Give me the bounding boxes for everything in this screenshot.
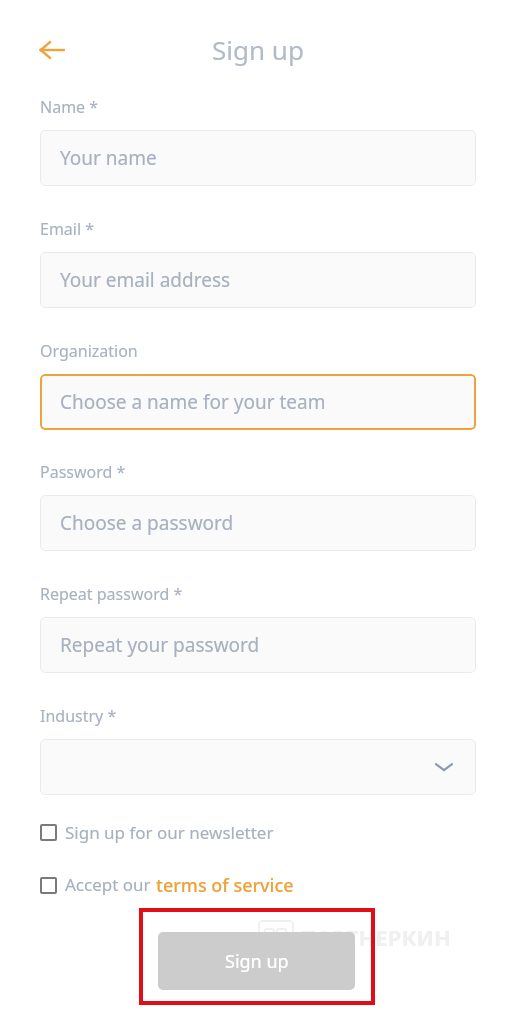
button[interactable]: Your name	[40, 130, 476, 186]
staticText: Sign up	[0, 32, 516, 67]
staticText: Your email address	[60, 267, 231, 293]
button[interactable]: Repeat your password	[40, 617, 476, 673]
staticText: Accept our	[65, 873, 156, 896]
button[interactable]	[40, 739, 476, 795]
button[interactable]: Your email address	[40, 252, 476, 308]
staticText: Industry *	[40, 705, 117, 727]
staticText: ПАРТНЕРКИН	[300, 922, 451, 952]
button[interactable]: Back	[32, 30, 72, 70]
button[interactable]: Choose a password	[40, 495, 476, 551]
staticText: Name *	[40, 96, 99, 118]
staticText: Repeat password *	[40, 583, 183, 605]
staticText: Your name	[60, 145, 157, 171]
staticText: Repeat your password	[60, 632, 260, 658]
staticText: Choose a name for your team	[60, 389, 326, 415]
staticText: Password *	[40, 461, 126, 483]
staticText: Email *	[40, 218, 95, 240]
staticText: Sign up for our newsletter	[65, 821, 274, 844]
staticText: Organization	[40, 340, 138, 362]
staticText: Sign up	[225, 949, 289, 974]
button[interactable]: Sign up for our newsletter	[40, 821, 476, 844]
button[interactable]: Accept our	[40, 873, 476, 898]
button[interactable]: Choose a name for your team	[40, 374, 476, 430]
button[interactable]: Sign up	[158, 932, 355, 990]
staticText: Choose a password	[60, 510, 234, 536]
staticText: terms of service	[156, 873, 294, 898]
